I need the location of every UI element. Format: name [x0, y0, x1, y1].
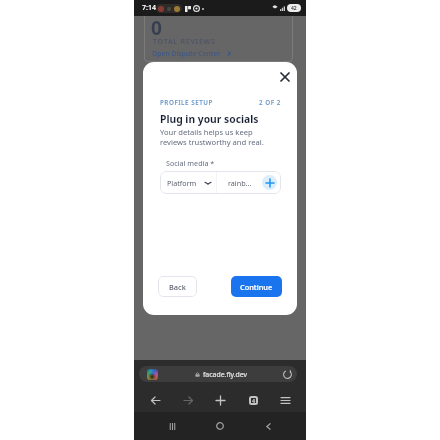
button[interactable]: Menu	[275, 390, 295, 410]
staticText: Your details helps us keep reviews trust…	[160, 127, 264, 148]
button[interactable]: Back	[158, 276, 197, 297]
staticText: Plug in your socials	[160, 112, 259, 126]
button[interactable]: facade.fly.dev	[139, 366, 297, 382]
button[interactable]: Back	[258, 416, 278, 436]
staticText: Social media *	[166, 158, 215, 168]
staticText: 2 OF 2	[259, 98, 281, 107]
staticText: TOTAL REVIEWS	[153, 37, 216, 47]
staticText: 42	[291, 5, 297, 12]
button[interactable]: Continue	[231, 276, 282, 297]
button[interactable]: Platform	[160, 171, 216, 194]
button[interactable]: Forward	[178, 390, 198, 410]
staticText: Platform	[167, 178, 197, 188]
staticText: rainb...	[228, 178, 252, 188]
staticText: PROFILE SETUP	[160, 98, 213, 107]
button[interactable]: Recents	[162, 416, 182, 436]
button[interactable]: rainb...	[217, 171, 262, 194]
staticText: Back	[169, 282, 186, 292]
button[interactable]: Add social media	[262, 175, 277, 190]
staticText: Continue	[240, 282, 273, 292]
button[interactable]: Open Dispute Center	[152, 49, 232, 58]
button[interactable]: Home	[210, 416, 230, 436]
staticText: facade.fly.dev	[203, 370, 248, 379]
staticText: 4	[252, 397, 256, 404]
button[interactable]: New tab	[210, 390, 230, 410]
button[interactable]: Tabs	[243, 390, 263, 410]
staticText: Open Dispute Center	[152, 49, 221, 58]
staticText: 0	[151, 15, 162, 41]
staticText: 7:14	[142, 3, 156, 13]
button[interactable]: Close	[277, 69, 292, 84]
button[interactable]: Reload	[281, 368, 293, 380]
button[interactable]: Back	[145, 390, 165, 410]
